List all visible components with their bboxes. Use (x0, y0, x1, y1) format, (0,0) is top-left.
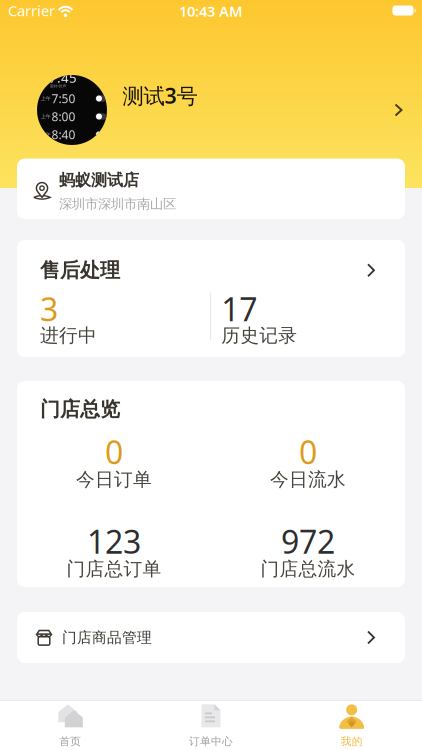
staticText: 7:45 (49, 69, 77, 86)
button[interactable]: 3 (17, 288, 210, 353)
staticText: 我的 (341, 735, 363, 748)
button[interactable]: 17 (211, 288, 405, 353)
button[interactable]: 门店商品管理 (17, 612, 405, 663)
staticText: 售后处理 (40, 258, 120, 283)
staticText: 7:50 (51, 90, 75, 106)
staticText: 测试3号 (122, 81, 197, 110)
staticText: 今日订单 (76, 468, 152, 491)
button[interactable]: 首页 (0, 701, 141, 750)
staticText: 进行中 (40, 324, 97, 347)
button[interactable]: 蚂蚁测试店 (17, 158, 405, 219)
button[interactable]: 售后处理 (17, 240, 405, 283)
staticText: 972 (281, 520, 335, 562)
staticText: Carrier (8, 1, 55, 20)
staticText: 首页 (59, 735, 81, 748)
staticText: 123 (87, 520, 141, 562)
staticText: 17 (221, 288, 257, 330)
button[interactable]: 我的 (281, 701, 422, 750)
staticText: 3 (40, 288, 58, 330)
staticText: 蚂蚁测试店 (59, 170, 139, 190)
staticText: 8:00 (51, 108, 75, 124)
staticText: 门店总订单 (66, 557, 161, 580)
staticText: 深圳市深圳市南山区 (59, 196, 176, 212)
staticText: 上午 (40, 113, 50, 120)
staticText: 门店总流水 (260, 557, 355, 580)
button[interactable]: 7:45 (17, 75, 405, 145)
staticText: 今日流水 (270, 468, 346, 491)
staticText: 0 (299, 431, 317, 473)
staticText: 8:40 (51, 126, 75, 142)
staticText: 0 (105, 431, 123, 473)
staticText: 闹钟·铃声 (49, 83, 66, 89)
staticText: 10:43 AM (179, 1, 243, 21)
staticText: 历史记录 (221, 324, 297, 347)
staticText: 上午 (40, 131, 50, 138)
staticText: 门店商品管理 (62, 628, 152, 646)
staticText: 订单中心 (189, 735, 233, 748)
staticText: 门店总览 (40, 397, 120, 422)
staticText: 上午 (40, 95, 50, 102)
button[interactable]: 订单中心 (141, 701, 281, 750)
